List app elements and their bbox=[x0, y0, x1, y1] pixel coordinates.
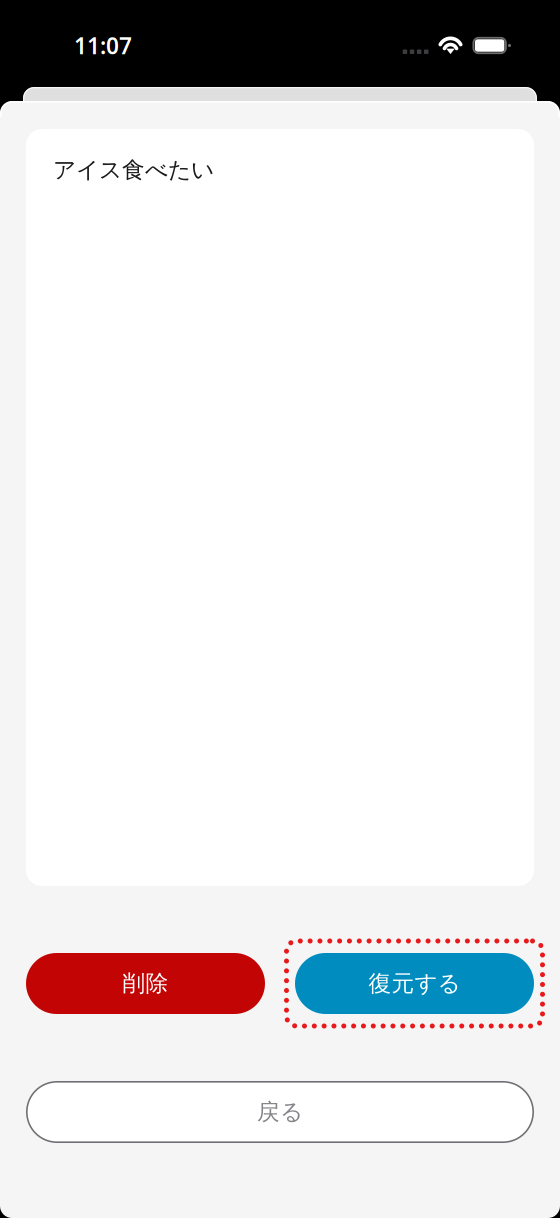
staticText: アイス食べたい bbox=[53, 156, 214, 184]
button[interactable]: 復元する bbox=[295, 953, 534, 1014]
staticText: 削除 bbox=[122, 970, 168, 997]
staticText: 戻る bbox=[257, 1098, 303, 1126]
staticText: 11:07 bbox=[74, 30, 132, 60]
button[interactable]: 戻る bbox=[26, 1081, 534, 1143]
staticText: 復元する bbox=[368, 970, 460, 997]
button[interactable]: 削除 bbox=[26, 953, 265, 1014]
